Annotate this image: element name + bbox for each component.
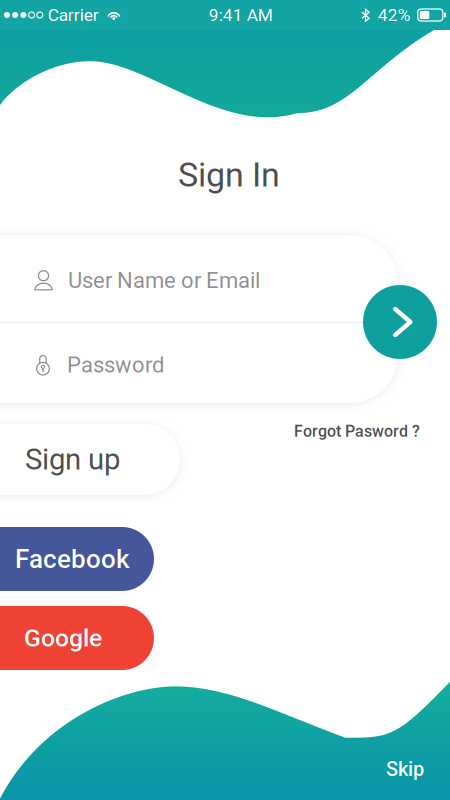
button[interactable]: Forgot Pasword ? — [294, 422, 420, 441]
button[interactable]: Sign In — [363, 285, 437, 359]
staticText: Carrier — [48, 5, 99, 25]
staticText: Facebook — [15, 544, 130, 574]
staticText: Sign In — [178, 155, 280, 195]
button[interactable]: Skip — [386, 758, 424, 781]
button[interactable]: Facebook — [0, 527, 204, 591]
staticText: User Name or Email — [68, 268, 260, 293]
staticText: Google — [24, 623, 102, 652]
staticText: 9:41 AM — [209, 5, 273, 25]
staticText: Forgot Pasword ? — [294, 422, 420, 441]
staticText: Password — [67, 352, 164, 378]
staticText: 42% — [378, 5, 411, 25]
button[interactable]: Google — [0, 606, 204, 670]
staticText: Skip — [386, 758, 424, 781]
staticText: Sign up — [25, 442, 120, 477]
button[interactable]: Sign up — [0, 424, 230, 495]
